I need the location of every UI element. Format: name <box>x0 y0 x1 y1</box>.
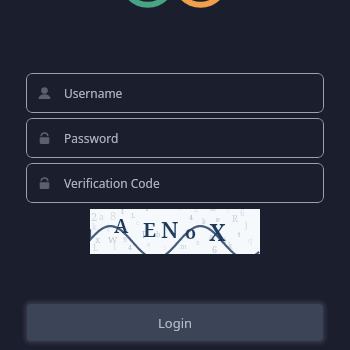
staticText: c <box>136 218 140 228</box>
staticText: k <box>228 240 233 251</box>
staticText: E <box>143 216 157 243</box>
staticText: m <box>210 209 216 213</box>
staticText: r <box>174 219 177 227</box>
staticText: t <box>121 209 124 216</box>
staticText: 1 <box>112 240 118 252</box>
staticText: L <box>93 242 98 253</box>
staticText: 9 <box>123 235 127 245</box>
staticText: b <box>156 230 161 240</box>
staticText: Username <box>64 85 123 101</box>
staticText: Verification Code <box>64 175 160 191</box>
staticText: q <box>248 236 253 246</box>
staticText: t <box>238 230 241 240</box>
staticText: x <box>95 233 101 245</box>
staticText: 5 <box>226 209 230 216</box>
button[interactable]: Captcha image, tap to refresh <box>90 209 260 254</box>
staticText: 4 <box>189 213 193 223</box>
button[interactable]: Verification Code <box>26 163 324 203</box>
button[interactable]: Password <box>26 118 324 158</box>
staticText: P <box>142 229 147 240</box>
staticText: d <box>169 228 173 236</box>
staticText: X <box>209 216 226 247</box>
staticText: 6 <box>212 243 218 254</box>
staticText: m <box>180 242 187 252</box>
staticText: Login <box>158 314 193 332</box>
staticText: Password <box>64 130 119 146</box>
staticText: 4 <box>128 243 132 253</box>
staticText: N <box>161 214 179 244</box>
staticText: 8 <box>221 234 227 246</box>
staticText: 2 <box>91 209 98 224</box>
staticText: 8 <box>147 241 151 249</box>
staticText: A <box>114 213 129 239</box>
staticText: R <box>232 212 238 224</box>
staticText: L <box>131 211 136 221</box>
staticText: 8 <box>110 209 117 223</box>
staticText: 2 <box>163 244 167 252</box>
staticText: 8 <box>178 209 182 212</box>
staticText: w <box>108 231 118 246</box>
staticText: 1 <box>145 209 149 214</box>
button[interactable]: Login <box>27 304 323 341</box>
staticText: k <box>202 217 207 227</box>
staticText: o <box>185 220 197 245</box>
staticText: g <box>151 220 155 228</box>
staticText: k <box>92 221 97 232</box>
staticText: q <box>106 225 110 233</box>
staticText: 5 <box>196 239 200 247</box>
staticText: a <box>209 231 214 242</box>
button[interactable]: Username <box>26 73 324 113</box>
staticText: 2 <box>194 209 199 214</box>
staticText: a <box>99 210 105 222</box>
staticText: 6 <box>240 209 245 218</box>
staticText: j <box>245 219 248 230</box>
staticText: 2 <box>185 232 189 240</box>
staticText: p <box>216 215 220 223</box>
